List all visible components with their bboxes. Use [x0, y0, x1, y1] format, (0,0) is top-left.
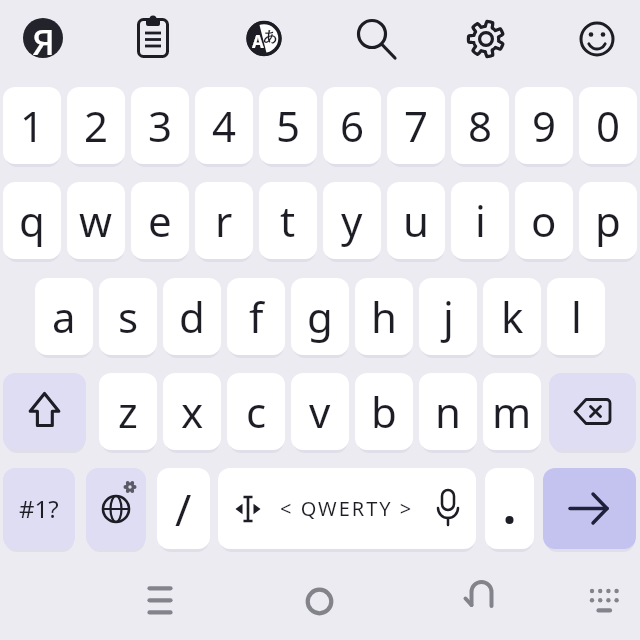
button[interactable]: x [163, 373, 221, 450]
staticText: j [443, 288, 454, 345]
staticText: 0 [596, 97, 621, 154]
staticText: 1 [20, 97, 45, 154]
button[interactable]: w [67, 182, 125, 259]
button[interactable]: o [515, 182, 573, 259]
staticText: A [252, 30, 264, 53]
staticText: z [118, 383, 138, 440]
button[interactable]: i [451, 182, 509, 259]
staticText: < QWERTY > [280, 495, 414, 522]
button[interactable] [351, 14, 399, 62]
button[interactable] [549, 373, 636, 450]
button[interactable]: 9 [515, 87, 573, 164]
button[interactable]: 0 [579, 87, 637, 164]
staticText: x [181, 383, 204, 440]
staticText: k [501, 288, 524, 345]
button[interactable] [129, 14, 177, 62]
button[interactable] [543, 468, 636, 549]
staticText: a [52, 288, 76, 345]
button[interactable] [3, 373, 86, 450]
button[interactable] [580, 578, 628, 626]
button[interactable]: d [163, 278, 221, 355]
staticText: n [435, 383, 461, 440]
staticText: w [79, 192, 113, 249]
button[interactable]: b [355, 373, 413, 450]
staticText: m [492, 383, 532, 440]
staticText: p [595, 192, 621, 249]
staticText: s [118, 288, 139, 345]
button[interactable]: l [547, 278, 605, 355]
button[interactable] [136, 578, 184, 626]
button[interactable] [485, 468, 534, 549]
staticText: v [309, 383, 331, 440]
button[interactable]: < QWERTY > [218, 468, 476, 549]
button[interactable]: 7 [387, 87, 445, 164]
staticText: 6 [340, 97, 365, 154]
button[interactable] [462, 14, 510, 62]
button[interactable] [456, 578, 504, 626]
button[interactable]: 2 [67, 87, 125, 164]
staticText: y [341, 192, 363, 249]
button[interactable] [296, 578, 344, 626]
button[interactable]: s [99, 278, 157, 355]
staticText: あ [263, 28, 278, 46]
button[interactable]: v [291, 373, 349, 450]
button[interactable]: 1 [3, 87, 61, 164]
staticText: Я [32, 18, 55, 58]
staticText: 8 [468, 97, 493, 154]
button[interactable]: m [483, 373, 541, 450]
staticText: d [179, 288, 205, 345]
button[interactable]: p [579, 182, 637, 259]
button[interactable]: n [419, 373, 477, 450]
button[interactable]: y [323, 182, 381, 259]
button[interactable]: a [35, 278, 93, 355]
staticText: q [19, 192, 45, 249]
button[interactable]: j [419, 278, 477, 355]
button[interactable] [573, 14, 621, 62]
staticText: f [249, 288, 264, 345]
button[interactable]: g [291, 278, 349, 355]
staticText: #1? [19, 492, 59, 525]
staticText: 4 [212, 97, 237, 154]
button[interactable]: Я [23, 18, 63, 58]
button[interactable]: r [195, 182, 253, 259]
button[interactable]: h [355, 278, 413, 355]
button[interactable] [86, 468, 146, 549]
staticText: 5 [276, 97, 301, 154]
staticText: h [371, 288, 397, 345]
button[interactable]: c [227, 373, 285, 450]
staticText: 7 [404, 97, 429, 154]
button[interactable]: 5 [259, 87, 317, 164]
staticText: 3 [148, 97, 173, 154]
button[interactable]: e [131, 182, 189, 259]
button[interactable]: u [387, 182, 445, 259]
staticText: 2 [84, 97, 109, 154]
button[interactable]: z [99, 373, 157, 450]
staticText: o [531, 192, 557, 249]
staticText: u [403, 192, 429, 249]
button[interactable]: t [259, 182, 317, 259]
staticText: g [307, 288, 333, 345]
button[interactable]: / [157, 468, 210, 549]
button[interactable]: #1? [3, 468, 75, 549]
button[interactable]: 3 [131, 87, 189, 164]
staticText: l [571, 288, 582, 345]
button[interactable]: 6 [323, 87, 381, 164]
button[interactable]: f [227, 278, 285, 355]
staticText: t [280, 192, 296, 249]
staticText: r [215, 192, 233, 249]
button[interactable]: q [3, 182, 61, 259]
button[interactable]: A [240, 14, 288, 62]
staticText: 9 [532, 97, 557, 154]
staticText: b [371, 383, 397, 440]
staticText: i [475, 192, 486, 249]
button[interactable]: 4 [195, 87, 253, 164]
button[interactable]: k [483, 278, 541, 355]
staticText: c [246, 383, 267, 440]
staticText: e [148, 192, 172, 249]
button[interactable]: 8 [451, 87, 509, 164]
staticText: / [175, 479, 192, 539]
